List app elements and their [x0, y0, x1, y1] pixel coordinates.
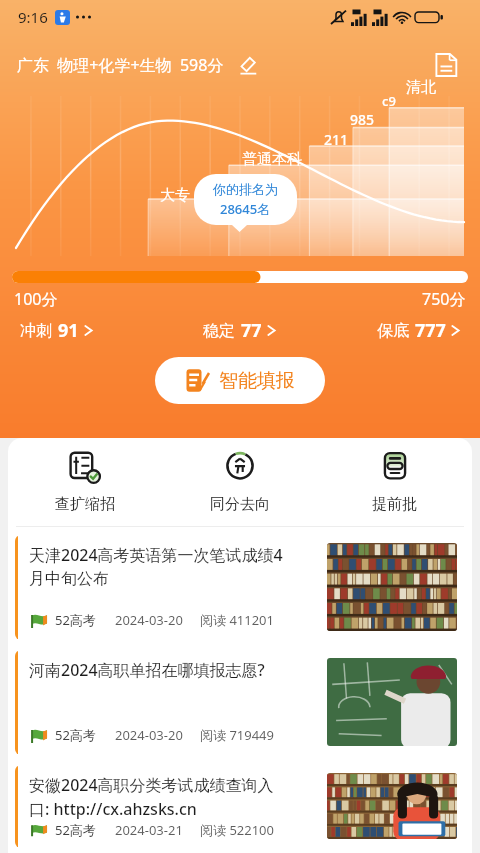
button[interactable]: 提前批 [317, 446, 472, 519]
button[interactable]: 冲刺 [20, 314, 93, 347]
button[interactable]: 智能填报 [155, 357, 325, 404]
staticText: 你的排名为 [213, 181, 278, 197]
button[interactable]: 查扩缩招 [8, 446, 162, 519]
staticText: 冲刺 [20, 321, 52, 341]
staticText: 同分去向 [210, 495, 270, 514]
staticText: 智能填报 [219, 369, 295, 393]
staticText: 211 [324, 130, 349, 149]
staticText: 查扩缩招 [55, 495, 115, 514]
staticText: 清北 [406, 78, 436, 97]
staticText: 2024-03-21 [115, 821, 183, 839]
staticText: 52高考 [55, 611, 96, 629]
staticText: 77 [241, 318, 262, 343]
staticText: 提前批 [372, 495, 417, 514]
button[interactable]: 安徽2024高职分类考试成绩查询入 口: http://cx.ahzsks.cn [15, 765, 465, 848]
staticText: 安徽2024高职分类考试成绩查询入 口: http://cx.ahzsks.cn [29, 774, 274, 820]
button[interactable]: 同分去向 [162, 446, 317, 519]
staticText: 100分 [14, 288, 58, 310]
button[interactable]: 保底 [377, 314, 460, 347]
staticText: 91 [58, 318, 79, 343]
staticText: 985 [350, 110, 375, 129]
staticText: 广东 物理+化学+生物 598分 [17, 54, 224, 76]
button[interactable]: 天津2024高考英语第一次笔试成绩4 月中旬公布 [15, 535, 465, 640]
staticText: 777 [415, 318, 446, 343]
staticText: 9:16 [18, 7, 48, 27]
button[interactable]: 稳定 [203, 314, 276, 347]
staticText: 2024-03-20 [115, 726, 183, 744]
staticText: 阅读 719449 [200, 726, 274, 744]
button[interactable]: 河南2024高职单招在哪填报志愿? [15, 650, 465, 755]
staticText: 普通本科 [242, 150, 302, 169]
button[interactable]: 编辑 [235, 52, 261, 78]
staticText: c9 [382, 92, 396, 110]
staticText: 52高考 [55, 821, 96, 839]
staticText: 52高考 [55, 726, 96, 744]
staticText: 稳定 [203, 321, 235, 341]
staticText: 阅读 411201 [200, 611, 274, 629]
staticText: 保底 [377, 321, 409, 341]
staticText: 28645名 [220, 200, 271, 218]
staticText: 河南2024高职单招在哪填报志愿? [29, 659, 265, 681]
staticText: 大专 [160, 186, 190, 205]
staticText: 750分 [422, 288, 466, 310]
button[interactable]: 志愿报告 [429, 48, 463, 82]
staticText: 天津2024高考英语第一次笔试成绩4 月中旬公布 [29, 544, 283, 589]
staticText: 2024-03-20 [115, 611, 183, 629]
staticText: 阅读 522100 [200, 821, 274, 839]
